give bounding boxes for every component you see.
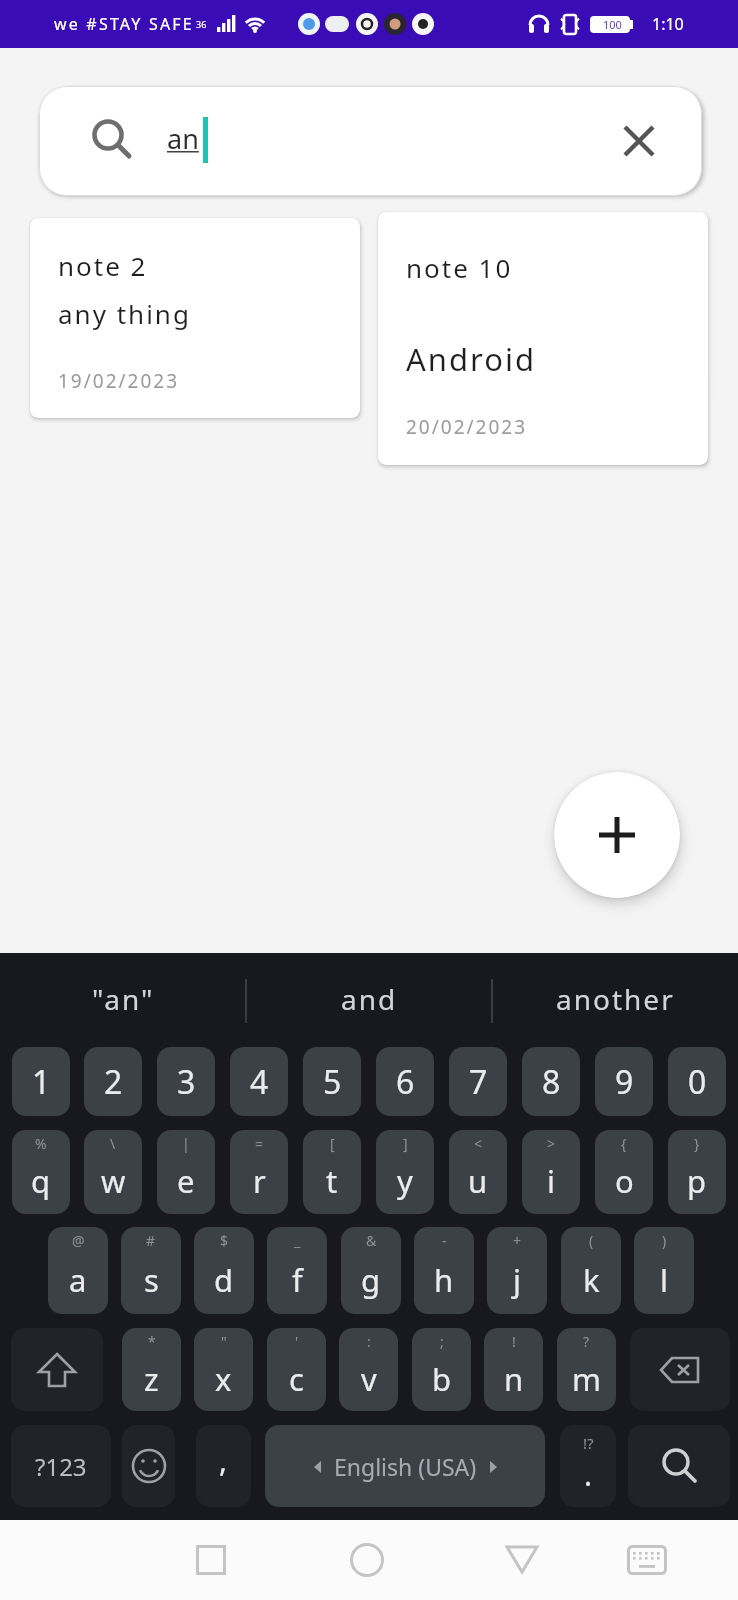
button[interactable]: } [668,1130,726,1214]
staticText: 7 [469,1060,488,1104]
staticText: ? [583,1332,590,1351]
button[interactable] [339,1532,395,1588]
button[interactable]: English (USA) [265,1425,545,1507]
staticText: d [214,1259,234,1301]
staticText: ; [440,1332,444,1351]
button[interactable]: ! [484,1328,543,1411]
button[interactable]: : [339,1328,398,1411]
button[interactable]: 2 [84,1047,142,1116]
button[interactable] [122,1425,175,1507]
button[interactable]: { [595,1130,653,1214]
button[interactable]: [ [303,1130,361,1214]
button[interactable]: < [449,1130,507,1214]
button[interactable] [554,772,680,898]
button[interactable]: "an" [0,953,246,1045]
staticText: * [148,1332,156,1351]
button[interactable]: , [196,1425,251,1507]
button[interactable] [619,1532,675,1588]
button[interactable] [630,1328,730,1411]
button[interactable]: - [414,1227,474,1314]
button[interactable]: = [230,1130,288,1214]
button[interactable]: 5 [303,1047,361,1116]
staticText: y [397,1160,413,1202]
staticText: 19/02/2023 [58,368,180,394]
staticText: , [219,1440,228,1481]
staticText: an [167,120,199,157]
staticText: r [253,1160,266,1202]
staticText: \ [110,1134,116,1153]
button[interactable]: $ [194,1227,254,1314]
button[interactable]: ] [376,1130,434,1214]
staticText: 1 [32,1060,51,1104]
staticText: ( [589,1231,594,1250]
staticText: we #STAY SAFE [54,13,194,35]
button[interactable] [183,1532,239,1588]
button[interactable]: | [157,1130,215,1214]
button[interactable]: and [246,953,492,1045]
staticText: 36 [196,18,207,30]
button[interactable]: 1 [12,1047,70,1116]
button[interactable] [617,119,661,163]
staticText: . [584,1454,593,1495]
staticText: = [255,1134,264,1153]
button[interactable]: ? [557,1328,616,1411]
button[interactable]: 7 [449,1047,507,1116]
button[interactable]: @ [48,1227,108,1314]
staticText: n [504,1358,524,1400]
button[interactable]: note 2 [30,218,360,418]
button[interactable]: 6 [376,1047,434,1116]
staticText: note 2 [58,248,148,283]
button[interactable]: ; [412,1328,471,1411]
staticText: 9 [615,1060,634,1104]
staticText: : [367,1332,371,1351]
button[interactable]: ?123 [11,1425,111,1507]
staticText: e [177,1160,195,1202]
button[interactable]: 0 [668,1047,726,1116]
staticText: m [572,1358,601,1400]
button[interactable]: ( [561,1227,621,1314]
button[interactable]: % [12,1130,70,1214]
staticText: any thing [58,296,191,331]
button[interactable]: 9 [595,1047,653,1116]
button[interactable]: \ [84,1130,142,1214]
staticText: t [326,1160,338,1202]
staticText: @ [72,1231,85,1250]
button[interactable]: + [487,1227,547,1314]
button[interactable]: 8 [522,1047,580,1116]
staticText: ! [512,1332,516,1351]
button[interactable]: !? [560,1425,616,1507]
button[interactable]: _ [267,1227,327,1314]
button[interactable]: " [194,1328,253,1411]
button[interactable]: ' [267,1328,326,1411]
staticText: "an" [92,980,155,1018]
staticText: 1:10 [652,13,684,35]
staticText: 6 [396,1060,415,1104]
staticText: b [432,1358,452,1400]
button[interactable]: ) [634,1227,694,1314]
staticText: 2 [104,1060,123,1104]
staticText: 5 [323,1060,342,1104]
button[interactable]: > [522,1130,580,1214]
staticText: c [289,1358,304,1400]
button[interactable]: * [122,1328,181,1411]
staticText: Android [406,338,537,380]
staticText: another [556,980,675,1018]
staticText: English (USA) [334,1451,477,1482]
button[interactable]: note 10 [378,212,708,465]
staticText: l [660,1259,668,1301]
staticText: < [474,1134,483,1153]
staticText: g [361,1259,381,1301]
button[interactable] [494,1532,550,1588]
button[interactable]: another [492,953,738,1045]
button[interactable]: an [39,86,702,196]
button[interactable]: & [341,1227,401,1314]
button[interactable]: # [121,1227,181,1314]
staticText: [ [330,1134,335,1153]
button[interactable] [628,1425,730,1507]
staticText: q [31,1160,51,1202]
button[interactable] [11,1328,103,1411]
staticText: 100 [603,17,622,32]
staticText: w [101,1160,126,1202]
button[interactable]: 4 [230,1047,288,1116]
button[interactable]: 3 [157,1047,215,1116]
